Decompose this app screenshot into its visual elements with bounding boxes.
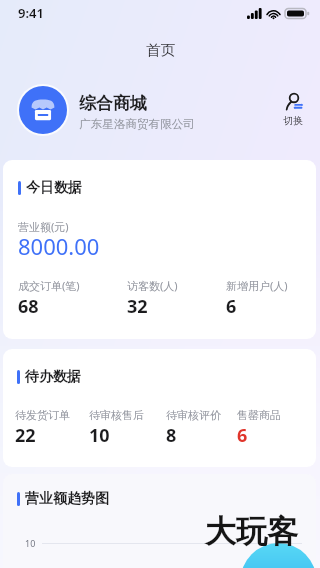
staticText: 6 bbox=[226, 294, 237, 319]
staticText: 切换 bbox=[283, 114, 303, 127]
staticText: 营业额(元) bbox=[18, 219, 69, 234]
staticText: 6 bbox=[237, 423, 248, 448]
staticText: 待审核售后 bbox=[89, 408, 144, 422]
staticText: 9:41 bbox=[18, 4, 44, 22]
staticText: 68 bbox=[18, 294, 39, 319]
staticText: 今日数据 bbox=[26, 179, 82, 197]
staticText: 综合商城 bbox=[79, 93, 147, 114]
staticText: 10 bbox=[89, 423, 110, 448]
staticText: 访客数(人) bbox=[127, 278, 178, 293]
staticText: 待办数据 bbox=[25, 368, 81, 386]
staticText: 待发货订单 bbox=[15, 408, 70, 422]
staticText: 22 bbox=[15, 423, 36, 448]
staticText: 8000.00 bbox=[18, 231, 100, 261]
staticText: 大玩客 bbox=[205, 512, 298, 551]
staticText: 成交订单(笔) bbox=[18, 278, 80, 293]
staticText: 广东星洛商贸有限公司 bbox=[79, 117, 195, 132]
staticText: 首页 bbox=[146, 41, 175, 59]
staticText: 10 bbox=[25, 537, 36, 549]
button[interactable]: 切换 bbox=[279, 89, 307, 131]
staticText: 32 bbox=[127, 294, 148, 319]
staticText: 新增用户(人) bbox=[226, 278, 288, 293]
staticText: 售罄商品 bbox=[237, 408, 281, 422]
staticText: 营业额趋势图 bbox=[25, 490, 109, 508]
staticText: 8 bbox=[166, 423, 177, 448]
staticText: 待审核评价 bbox=[166, 408, 221, 422]
